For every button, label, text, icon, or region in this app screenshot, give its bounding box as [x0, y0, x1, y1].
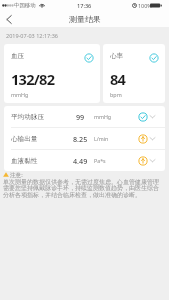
button[interactable]: 心输出量: [4, 128, 165, 149]
staticText: 血压: [11, 52, 25, 60]
staticText: 心率: [110, 52, 124, 60]
staticText: 2019-07-03 12:17:36: [6, 32, 58, 39]
staticText: 血液黏性: [11, 157, 38, 165]
staticText: 测量结果: [69, 14, 101, 24]
staticText: 心输出量: [11, 135, 38, 143]
staticText: 4.49: [73, 156, 88, 166]
button[interactable]: 返回: [0, 11, 17, 27]
staticText: 平均动脉压: [11, 113, 44, 121]
staticText: L/min: [94, 135, 109, 142]
button[interactable]: 平均动脉压: [4, 106, 165, 127]
button[interactable]: 心率: [103, 44, 165, 103]
staticText: 注意:: [10, 171, 23, 178]
staticText: mmHg: [94, 113, 112, 120]
staticText: 中国移动: [14, 2, 36, 9]
staticText: 100%: [138, 2, 152, 9]
staticText: 99: [76, 112, 85, 122]
staticText: 17:36: [77, 2, 92, 10]
staticText: 单次测量的数据仅供参考，无需过度焦虑。心血管健康管理需要您坚持佩戴脉诊手环，持续…: [3, 178, 160, 199]
staticText: 84: [110, 69, 126, 89]
staticText: mmHg: [11, 91, 29, 98]
staticText: 132/82: [11, 69, 55, 89]
staticText: 8.25: [73, 134, 88, 144]
staticText: Pa*s: [94, 157, 106, 164]
button[interactable]: 血液黏性: [4, 150, 165, 171]
staticText: bpm: [110, 91, 122, 98]
button[interactable]: 血压: [4, 44, 100, 103]
